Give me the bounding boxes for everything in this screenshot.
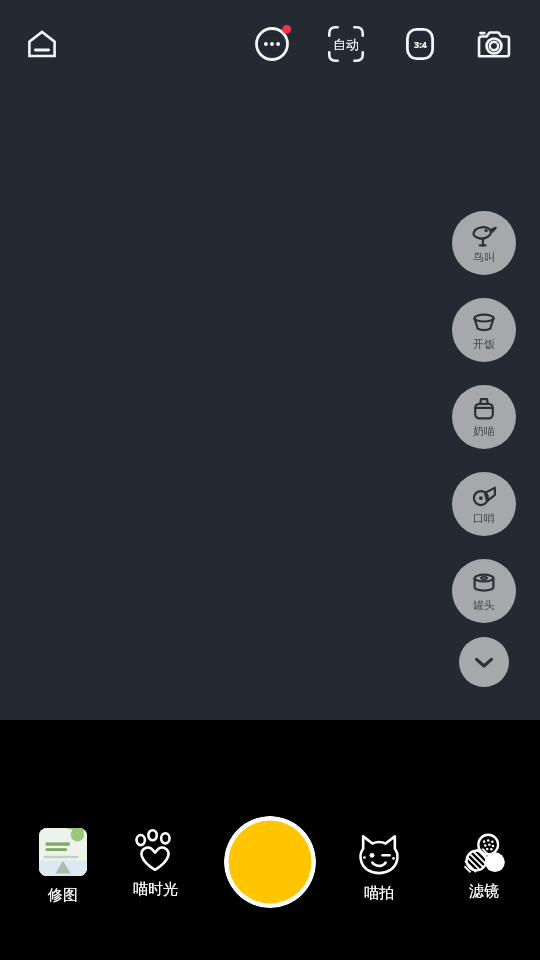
button[interactable]: Shutter [224, 816, 316, 908]
button[interactable]: 修图 [25, 828, 101, 905]
button[interactable]: 口哨 [452, 472, 516, 536]
staticText: 自动 [333, 36, 359, 52]
button[interactable]: Cat sticker [341, 832, 417, 903]
button[interactable]: Switch camera [470, 20, 518, 68]
button[interactable]: Home [18, 20, 66, 68]
button[interactable]: Collapse [459, 637, 509, 687]
button[interactable]: 喵时光 [117, 828, 193, 899]
staticText: 开饭 [473, 337, 495, 351]
button[interactable]: 罐头 [452, 559, 516, 623]
staticText: 罐头 [473, 598, 495, 612]
button[interactable]: More options [248, 20, 296, 68]
staticText: 3:4 [414, 38, 427, 50]
button[interactable]: 鸟叫 [452, 211, 516, 275]
button[interactable]: 开饭 [452, 298, 516, 362]
button[interactable]: 自动 [322, 20, 370, 68]
staticText: 滤镜 [469, 882, 499, 901]
staticText: 喵拍 [364, 884, 394, 903]
button[interactable]: 3:4 [396, 20, 444, 68]
staticText: 喵时光 [133, 880, 178, 899]
staticText: 口哨 [473, 511, 495, 525]
button[interactable]: Filters [446, 832, 522, 901]
staticText: 修图 [48, 886, 78, 905]
staticText: 奶喵 [473, 424, 495, 438]
staticText: 鸟叫 [473, 250, 495, 264]
button[interactable]: 奶喵 [452, 385, 516, 449]
